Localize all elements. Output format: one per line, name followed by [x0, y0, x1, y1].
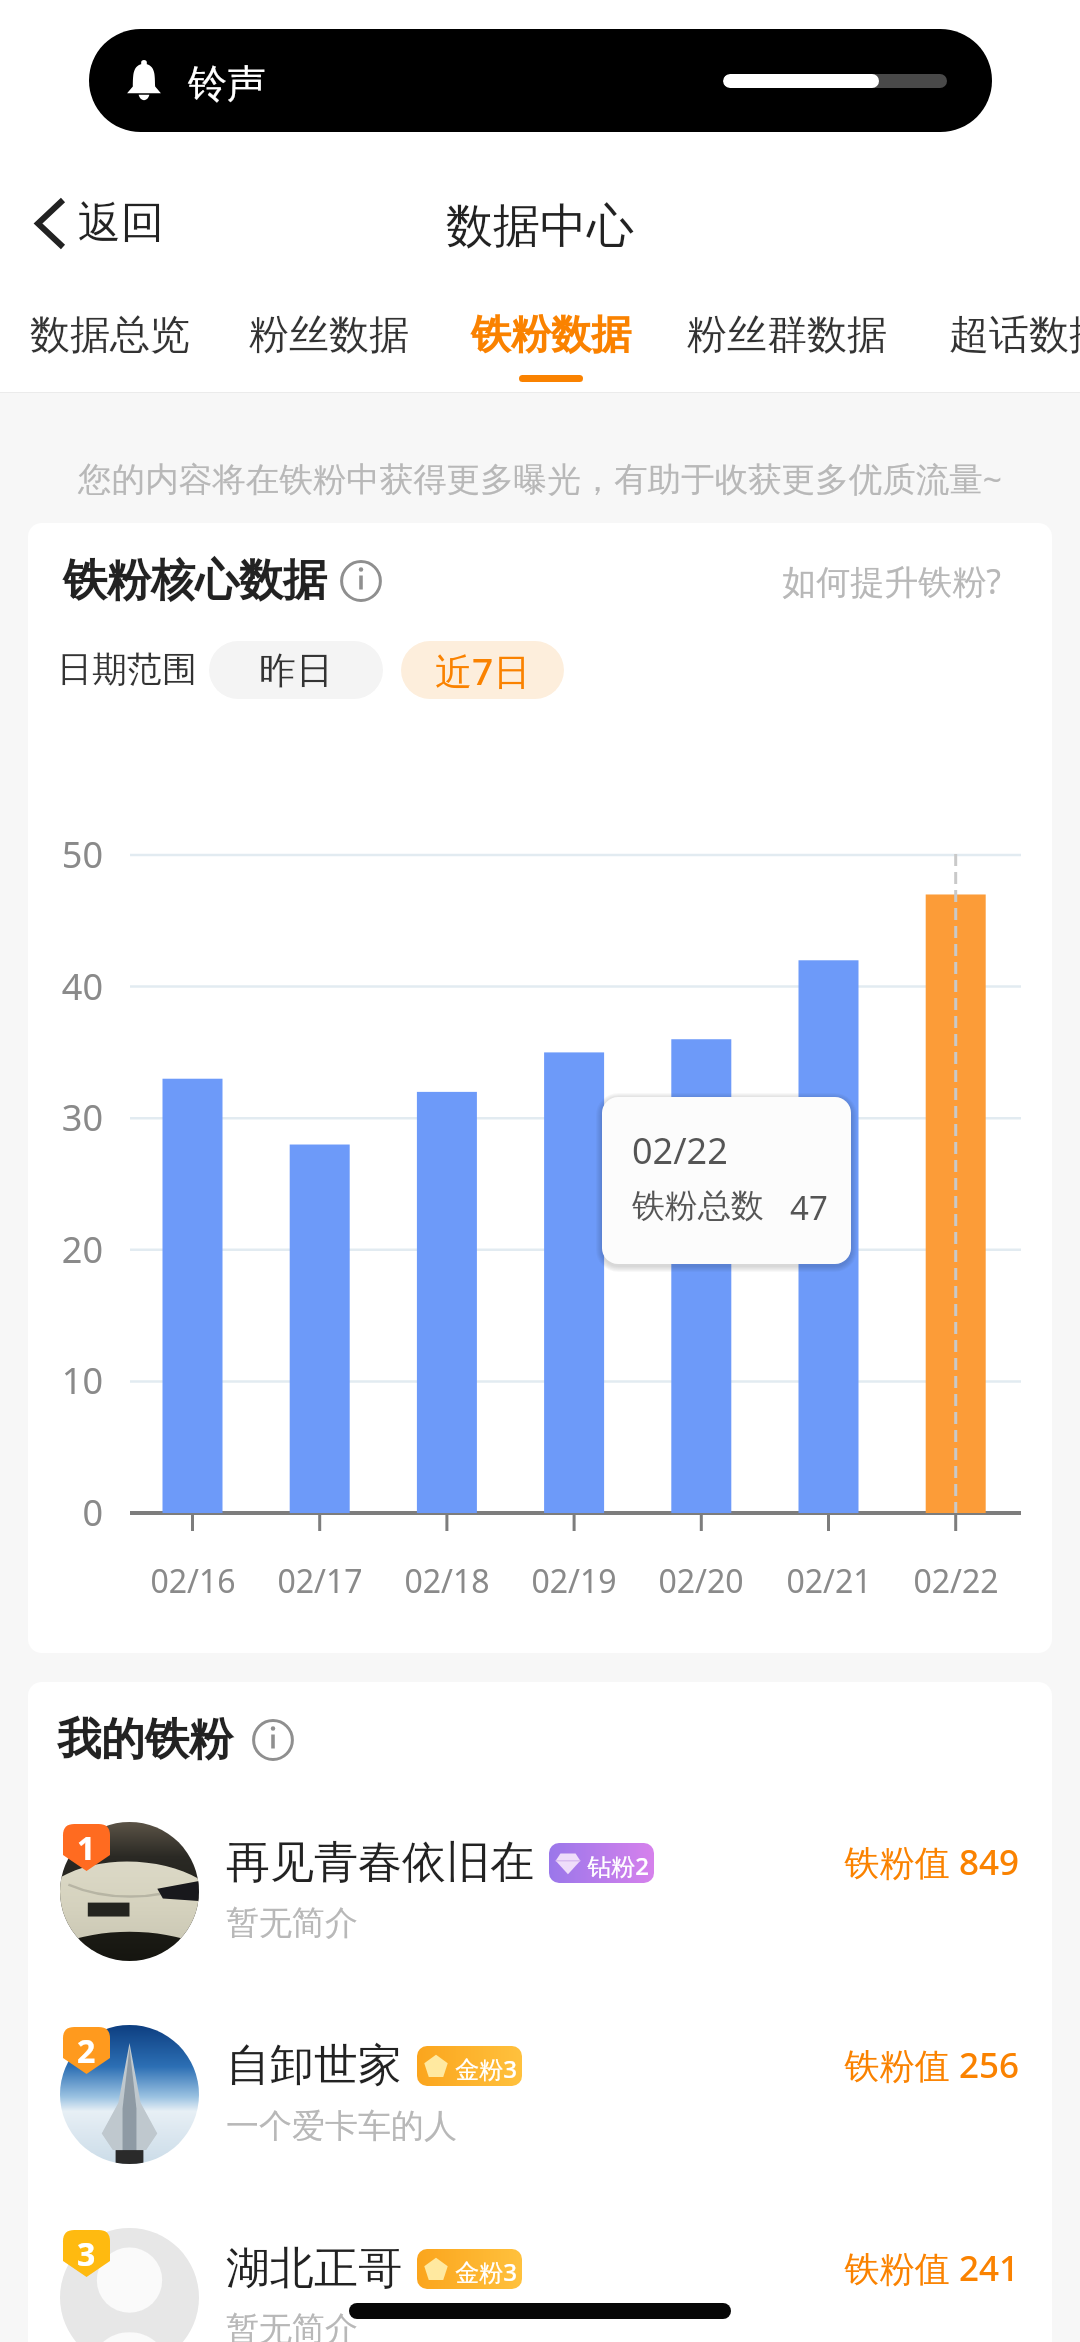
button[interactable]: 粉丝群数据: [664, 298, 909, 386]
button[interactable]: 2: [28, 2002, 1052, 2205]
staticText: 0: [28, 1488, 103, 1537]
button[interactable]: 3: [28, 2205, 1052, 2342]
staticText: 暂无简介: [226, 2308, 358, 2342]
staticText: 超话数据: [949, 309, 1080, 359]
staticText: 02/17: [250, 1559, 390, 1603]
button[interactable]: More information: [252, 1719, 294, 1761]
staticText: 铁粉核心数据: [63, 553, 327, 608]
staticText: 我的铁粉: [57, 1712, 233, 1767]
staticText: 暂无简介: [226, 1902, 358, 1944]
staticText: 20: [28, 1225, 103, 1274]
button[interactable]: More information: [340, 560, 382, 602]
staticText: 10: [28, 1356, 103, 1405]
staticText: 一个爱卡车的人: [226, 2105, 457, 2147]
staticText: 02/22: [632, 1126, 728, 1175]
staticText: 02/20: [631, 1559, 771, 1603]
staticText: 铁粉总数: [632, 1185, 764, 1227]
staticText: 02/18: [377, 1559, 517, 1603]
button[interactable]: 1: [28, 1799, 1052, 2002]
button[interactable]: 近7日: [401, 641, 564, 699]
button[interactable]: 粉丝数据: [227, 298, 431, 386]
staticText: 您的内容将在铁粉中获得更多曝光，有助于收获更多优质流量~: [0, 455, 1080, 501]
staticText: 02/19: [504, 1559, 644, 1603]
staticText: 铁粉值 241: [28, 2244, 1019, 2292]
staticText: 3: [77, 2232, 96, 2276]
staticText: 数据中心: [0, 197, 1080, 256]
staticText: 02/21: [759, 1559, 899, 1603]
staticText: 钻粉2: [586, 1849, 650, 1882]
staticText: 铁粉值 256: [28, 2041, 1019, 2089]
staticText: 数据总览: [30, 309, 190, 359]
staticText: 湖北正哥: [226, 2241, 402, 2296]
staticText: 铁粉值 849: [28, 1838, 1019, 1886]
staticText: 自卸世家: [226, 2038, 402, 2093]
staticText: 粉丝数据: [249, 309, 409, 359]
staticText: 近7日: [435, 645, 531, 696]
button[interactable]: 昨日: [209, 641, 383, 699]
button[interactable]: 超话数据: [927, 298, 1080, 386]
staticText: 1: [77, 1826, 96, 1870]
staticText: 昨日: [259, 647, 333, 694]
staticText: 50: [28, 830, 103, 879]
staticText: 日期范围: [57, 647, 197, 691]
button[interactable]: Ringtone volume: [89, 29, 992, 132]
button[interactable]: 如何提升铁粉?: [28, 558, 1001, 604]
staticText: 铁粉数据: [471, 309, 631, 359]
staticText: 2: [77, 2029, 96, 2073]
staticText: 金粉3: [454, 2255, 518, 2288]
button[interactable]: 铁粉数据: [449, 298, 653, 386]
staticText: 返回: [78, 196, 164, 250]
button[interactable]: 返回: [27, 186, 172, 260]
staticText: 再见青春依旧在: [226, 1835, 534, 1890]
button[interactable]: 数据总览: [8, 298, 212, 386]
staticText: 粉丝群数据: [687, 309, 887, 359]
staticText: 铃声: [188, 59, 266, 108]
staticText: 02/22: [886, 1559, 1026, 1603]
staticText: 47: [790, 1185, 828, 1230]
staticText: 30: [28, 1093, 103, 1142]
staticText: 金粉3: [454, 2052, 518, 2085]
staticText: 02/16: [123, 1559, 263, 1603]
staticText: 40: [28, 962, 103, 1011]
